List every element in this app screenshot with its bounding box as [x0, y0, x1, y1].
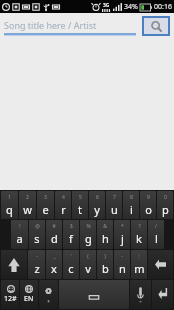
button[interactable]: Enter: [152, 280, 173, 309]
button[interactable]: 3: [37, 191, 54, 219]
staticText: 7: [113, 194, 116, 201]
staticText: /: [155, 223, 157, 230]
staticText: l: [155, 231, 158, 246]
button[interactable]: :: [131, 250, 147, 279]
staticText: EN: [24, 294, 34, 304]
staticText: 5: [79, 194, 82, 201]
staticText: ): [104, 253, 106, 260]
staticText: ': [70, 253, 72, 260]
staticText: %: [86, 223, 91, 230]
button[interactable]: Search: [142, 16, 170, 36]
button[interactable]: 5: [72, 191, 88, 219]
button[interactable]: Backspace: [148, 250, 173, 279]
staticText: o: [145, 202, 152, 217]
staticText: q: [6, 202, 13, 217]
staticText: 2: [26, 194, 29, 201]
button[interactable]: 6: [89, 191, 105, 219]
staticText: y: [94, 202, 100, 217]
button[interactable]: 0: [157, 191, 173, 219]
staticText: i: [130, 202, 133, 217]
staticText: z: [34, 261, 40, 276]
staticText: Song title here / Artist: [4, 19, 97, 31]
staticText: 00:16: [154, 2, 172, 12]
button[interactable]: #: [46, 220, 62, 249]
staticText: (: [87, 253, 89, 260]
staticText: f: [69, 231, 73, 246]
staticText: &: [103, 223, 107, 230]
button[interactable]: Symbols: [1, 280, 19, 309]
staticText: 6: [96, 194, 99, 201]
button[interactable]: Voice input: [130, 280, 151, 309]
staticText: #: [52, 223, 56, 230]
button[interactable]: $: [63, 220, 79, 249]
staticText: j: [121, 231, 124, 246]
staticText: p: [162, 202, 169, 217]
staticText: *: [121, 223, 124, 230]
button[interactable]: Language: [20, 280, 38, 309]
staticText: m: [134, 261, 145, 276]
staticText: 34%: [124, 2, 138, 12]
button[interactable]: @: [29, 220, 45, 249]
staticText: t: [78, 202, 82, 217]
staticText: h: [102, 231, 109, 246]
staticText: x: [51, 261, 57, 276]
staticText: d: [51, 231, 58, 246]
button[interactable]: %: [80, 220, 96, 249]
staticText: ?: [138, 223, 141, 230]
staticText: s: [34, 231, 40, 246]
staticText: _: [53, 253, 56, 260]
button[interactable]: -: [28, 250, 45, 279]
button[interactable]: -: [114, 250, 130, 279]
staticText: 3G: [103, 2, 110, 9]
button[interactable]: (: [80, 250, 96, 279]
button[interactable]: 1: [1, 191, 18, 219]
button[interactable]: /: [148, 220, 164, 249]
staticText: b: [102, 261, 109, 276]
button[interactable]: 4: [55, 191, 71, 219]
button[interactable]: &: [97, 220, 113, 249]
staticText: !: [19, 223, 21, 230]
button[interactable]: Song title here / Artist: [4, 16, 136, 36]
button[interactable]: !: [11, 220, 28, 249]
button[interactable]: 2: [19, 191, 36, 219]
button[interactable]: Settings: [39, 280, 58, 309]
staticText: n: [119, 261, 126, 276]
staticText: g: [85, 231, 92, 246]
staticText: 12#: [4, 294, 17, 304]
button[interactable]: *: [114, 220, 130, 249]
staticText: r: [61, 202, 66, 217]
staticText: 4: [62, 194, 65, 201]
button[interactable]: Shift: [1, 250, 27, 279]
staticText: a: [16, 231, 23, 246]
staticText: 3: [44, 194, 47, 201]
staticText: w: [23, 202, 32, 217]
staticText: 8: [130, 194, 133, 201]
button[interactable]: ?: [131, 220, 147, 249]
staticText: -: [36, 253, 38, 260]
button[interactable]: ): [97, 250, 113, 279]
staticText: 9: [147, 194, 150, 201]
button[interactable]: 7: [106, 191, 122, 219]
staticText: v: [85, 261, 91, 276]
staticText: @: [35, 223, 40, 230]
staticText: u: [111, 202, 118, 217]
staticText: :: [138, 253, 140, 260]
staticText: -: [121, 253, 123, 260]
staticText: 0: [164, 194, 167, 201]
staticText: k: [136, 231, 142, 246]
staticText: $: [70, 223, 73, 230]
button[interactable]: ': [63, 250, 79, 279]
button[interactable]: _: [46, 250, 62, 279]
staticText: e: [42, 202, 49, 217]
staticText: c: [68, 261, 74, 276]
button[interactable]: 9: [140, 191, 156, 219]
button[interactable]: Space: [59, 280, 129, 309]
button[interactable]: 8: [123, 191, 139, 219]
staticText: 1: [8, 194, 11, 201]
